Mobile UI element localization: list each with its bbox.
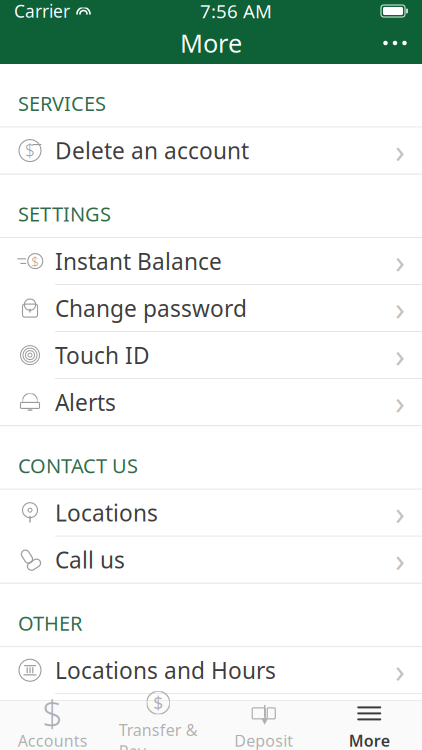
staticText: SETTINGS — [18, 201, 111, 227]
staticText: More — [349, 730, 390, 750]
button[interactable]: More — [316, 701, 422, 750]
button[interactable]: Touch ID — [0, 332, 422, 378]
staticText: Transfer & Pay — [119, 719, 198, 750]
staticText: Locations — [55, 498, 158, 528]
staticText: › — [395, 129, 405, 172]
button[interactable]: $ — [0, 694, 422, 740]
staticText: › — [395, 381, 405, 423]
button[interactable]: $ — [0, 128, 422, 174]
button[interactable]: Change password — [0, 285, 422, 331]
button[interactable]: Locations and Hours — [0, 647, 422, 693]
staticText: › — [395, 649, 405, 691]
button[interactable]: More options — [368, 23, 422, 63]
staticText: 7:56 AM — [200, 0, 272, 23]
staticText: Accounts — [18, 730, 88, 750]
staticText: OTHER — [18, 610, 82, 636]
staticText: Touch ID — [55, 340, 150, 370]
staticText: › — [395, 491, 405, 534]
button[interactable]: Call us — [0, 537, 422, 583]
staticText: $ — [25, 139, 35, 162]
staticText: Delete an account — [55, 135, 249, 166]
staticText: Rates — [55, 702, 114, 732]
staticText: SERVICES — [18, 90, 106, 117]
staticText: $ — [153, 691, 163, 714]
staticText: ▾ — [261, 713, 268, 728]
button[interactable]: $ — [0, 238, 422, 284]
staticText: › — [395, 538, 405, 581]
staticText: Call us — [55, 545, 125, 575]
staticText: Carrier — [14, 0, 70, 22]
staticText: Change password — [55, 293, 247, 323]
button[interactable]: ▾ — [211, 701, 316, 750]
staticText: Locations and Hours — [55, 655, 276, 685]
staticText: Alerts — [55, 387, 116, 417]
button[interactable]: Alerts — [0, 379, 422, 425]
staticText: Instant Balance — [55, 246, 222, 276]
button[interactable]: $ — [105, 701, 211, 750]
button[interactable]: $ — [0, 701, 105, 750]
staticText: Deposit — [234, 730, 293, 750]
staticText: › — [395, 240, 405, 282]
staticText: › — [395, 287, 405, 329]
staticText: $ — [31, 252, 39, 270]
staticText: › — [395, 334, 405, 376]
staticText: $ — [42, 689, 63, 737]
button[interactable]: Locations — [0, 490, 422, 536]
staticText: More — [180, 26, 242, 60]
staticText: CONTACT US — [18, 452, 138, 479]
